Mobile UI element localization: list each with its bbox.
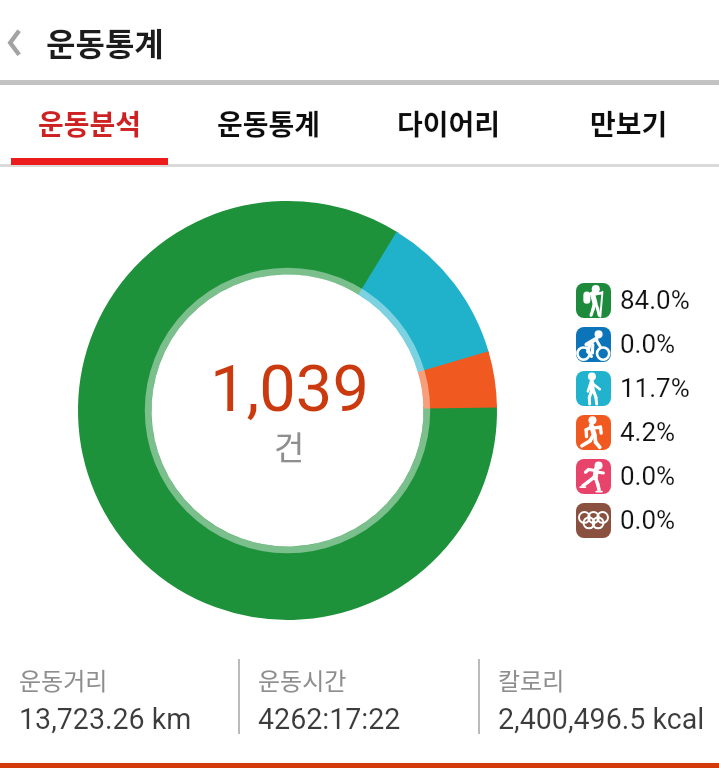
staticText: 다이어리 bbox=[397, 103, 501, 144]
staticText: 운동통계 bbox=[46, 19, 164, 65]
staticText: 만보기 bbox=[590, 103, 668, 144]
staticText: 11.7% bbox=[620, 373, 690, 403]
staticText: 1,039 bbox=[210, 351, 369, 427]
staticText: 0.0% bbox=[620, 461, 676, 491]
staticText: 운동시간 bbox=[258, 662, 347, 697]
staticText: 0.0% bbox=[620, 505, 676, 535]
staticText: 건 bbox=[274, 422, 305, 470]
button[interactable]: 0.0% bbox=[576, 322, 676, 366]
button[interactable]: Back bbox=[0, 0, 46, 80]
staticText: 4262:17:22 bbox=[258, 702, 401, 736]
button[interactable]: 만보기 bbox=[539, 85, 719, 165]
button[interactable]: 11.7% bbox=[576, 366, 690, 410]
button[interactable]: 0.0% bbox=[576, 498, 676, 542]
staticText: 칼로리 bbox=[498, 662, 565, 697]
button[interactable]: 다이어리 bbox=[359, 85, 539, 165]
staticText: 84.0% bbox=[620, 285, 690, 315]
button[interactable]: 운동통계 bbox=[179, 85, 359, 165]
staticText: 운동분석 bbox=[38, 103, 142, 144]
staticText: 0.0% bbox=[620, 329, 676, 359]
staticText: 4.2% bbox=[620, 417, 676, 447]
staticText: 2,400,496.5 kcal bbox=[498, 702, 705, 736]
button[interactable]: 84.0% bbox=[576, 278, 690, 322]
staticText: 운동거리 bbox=[19, 662, 108, 697]
staticText: 13,723.26 km bbox=[19, 702, 192, 736]
button[interactable]: 4.2% bbox=[576, 410, 676, 454]
staticText: 운동통계 bbox=[217, 103, 321, 144]
button[interactable]: 운동분석 bbox=[0, 85, 179, 165]
button[interactable]: 0.0% bbox=[576, 454, 676, 498]
